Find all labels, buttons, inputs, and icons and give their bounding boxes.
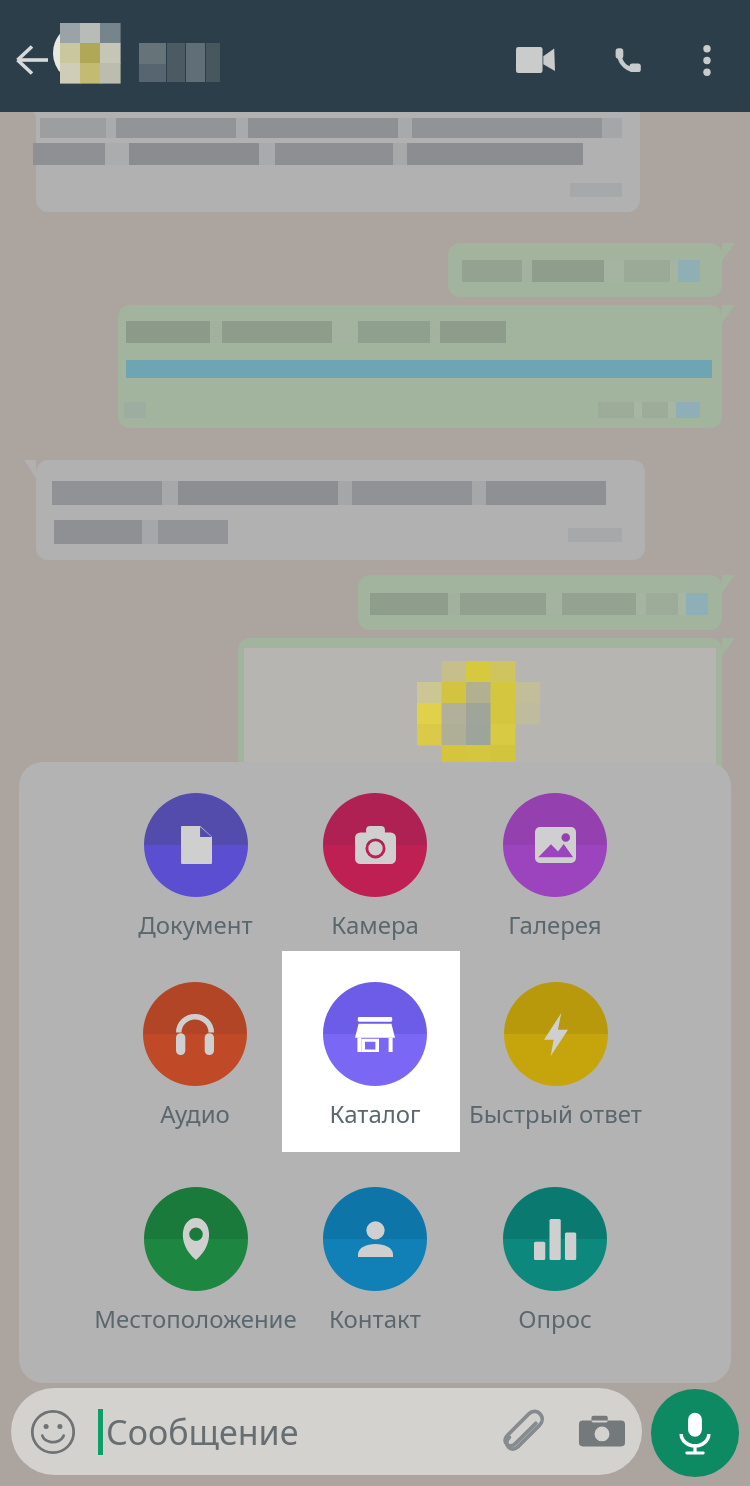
button[interactable]: Video call: [501, 26, 569, 94]
staticText: Местоположение: [94, 1302, 297, 1335]
staticText: Документ: [138, 908, 253, 941]
staticText: Быстрый ответ: [469, 1097, 642, 1130]
button[interactable]: Быстрый ответ: [435, 972, 675, 1148]
button[interactable]: Камера: [255, 783, 495, 959]
staticText: Сообщение: [106, 1409, 299, 1455]
button[interactable]: Record voice message: [651, 1389, 739, 1477]
staticText: Контакт: [329, 1302, 421, 1335]
button[interactable]: Местоположение: [75, 1177, 315, 1353]
button[interactable]: Voice call: [593, 27, 661, 95]
staticText: Каталог: [329, 1097, 421, 1130]
button[interactable]: Каталог: [255, 972, 495, 1148]
button[interactable]: Галерея: [435, 783, 675, 959]
staticText: Аудио: [160, 1097, 230, 1130]
staticText: Опрос: [518, 1302, 592, 1335]
button[interactable]: Camera: [568, 1398, 636, 1466]
button[interactable]: Emoji: [11, 1388, 642, 1475]
button[interactable]: Аудио: [75, 972, 315, 1148]
button[interactable]: Attach file: [486, 1398, 554, 1466]
button[interactable]: Документ: [75, 783, 315, 959]
button[interactable]: Опрос: [435, 1177, 675, 1353]
button[interactable]: More options: [675, 26, 739, 94]
button[interactable]: Emoji: [26, 1405, 80, 1459]
button[interactable]: Back: [0, 24, 64, 96]
staticText: Галерея: [508, 908, 602, 941]
button[interactable]: Контакт: [255, 1177, 495, 1353]
staticText: Камера: [331, 908, 419, 941]
button[interactable]: Contact profile: [53, 23, 121, 84]
